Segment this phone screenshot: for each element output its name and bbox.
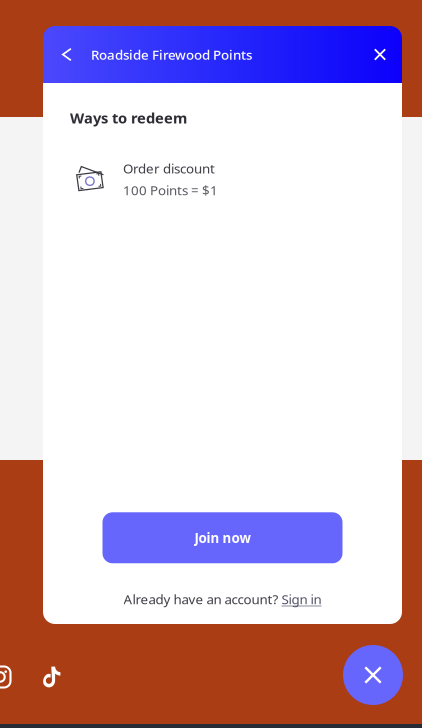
staticText: Ways to redeem <box>70 108 187 127</box>
button[interactable]: Instagram <box>0 657 11 697</box>
button[interactable]: Join now <box>102 512 342 563</box>
button[interactable]: Close <box>358 26 402 83</box>
button[interactable]: Close <box>343 645 403 705</box>
button[interactable]: Back <box>48 26 86 83</box>
button[interactable]: TikTok <box>43 657 61 697</box>
staticText: Roadside Firewood Points <box>91 46 252 63</box>
staticText: Join now <box>194 529 250 547</box>
button[interactable]: Sign in <box>281 590 321 608</box>
staticText: Sign in <box>281 590 321 608</box>
staticText: Already have an account? <box>123 590 281 608</box>
staticText: 100 Points = $1 <box>123 181 218 199</box>
staticText: Order discount <box>123 159 215 177</box>
